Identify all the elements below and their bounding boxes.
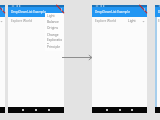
button[interactable]: Light: [45, 19, 62, 23]
button[interactable]: Exploration: [47, 38, 64, 44]
staticText: Light: [128, 19, 136, 23]
other: Tap indicator: [139, 5, 147, 13]
staticText: Light: [47, 14, 55, 18]
staticText: Principle: [47, 45, 60, 49]
staticText: Explore World: [158, 19, 160, 23]
button[interactable]: Change: [47, 32, 64, 38]
staticText: DropDownList Example: [158, 10, 160, 14]
staticText: Explore World: [95, 19, 116, 23]
other: Tap indicator: [0, 5, 5, 13]
other: More options: [61, 8, 62, 11]
staticText: Origins: [47, 26, 58, 30]
other: Open dropdown: [142, 20, 145, 23]
staticText: Explore World: [11, 19, 32, 23]
button[interactable]: Principle: [47, 44, 64, 50]
staticText: Exploration: [47, 38, 64, 44]
staticText: Balance: [47, 20, 59, 24]
button[interactable]: DropDownList Example: [8, 7, 64, 17]
staticText: DropDownList Example: [95, 10, 130, 14]
button[interactable]: Origins: [47, 25, 64, 31]
button[interactable]: DropDownList Example: [155, 7, 160, 17]
button[interactable]: Light: [47, 13, 64, 19]
other: More options: [144, 8, 145, 11]
button[interactable]: Light: [0, 19, 3, 23]
other: Open dropdown: [0, 20, 3, 23]
button[interactable]: Light: [128, 19, 145, 23]
button[interactable]: Balance: [47, 19, 64, 25]
staticText: Light: [45, 19, 53, 23]
staticText: DropDownList Example: [11, 10, 46, 14]
button[interactable]: DropDownList Example: [0, 7, 5, 17]
button[interactable]: DropDownList Example: [92, 7, 147, 17]
other: Tap indicator: [56, 5, 64, 13]
staticText: Change: [47, 33, 59, 37]
other: More options: [2, 8, 3, 11]
